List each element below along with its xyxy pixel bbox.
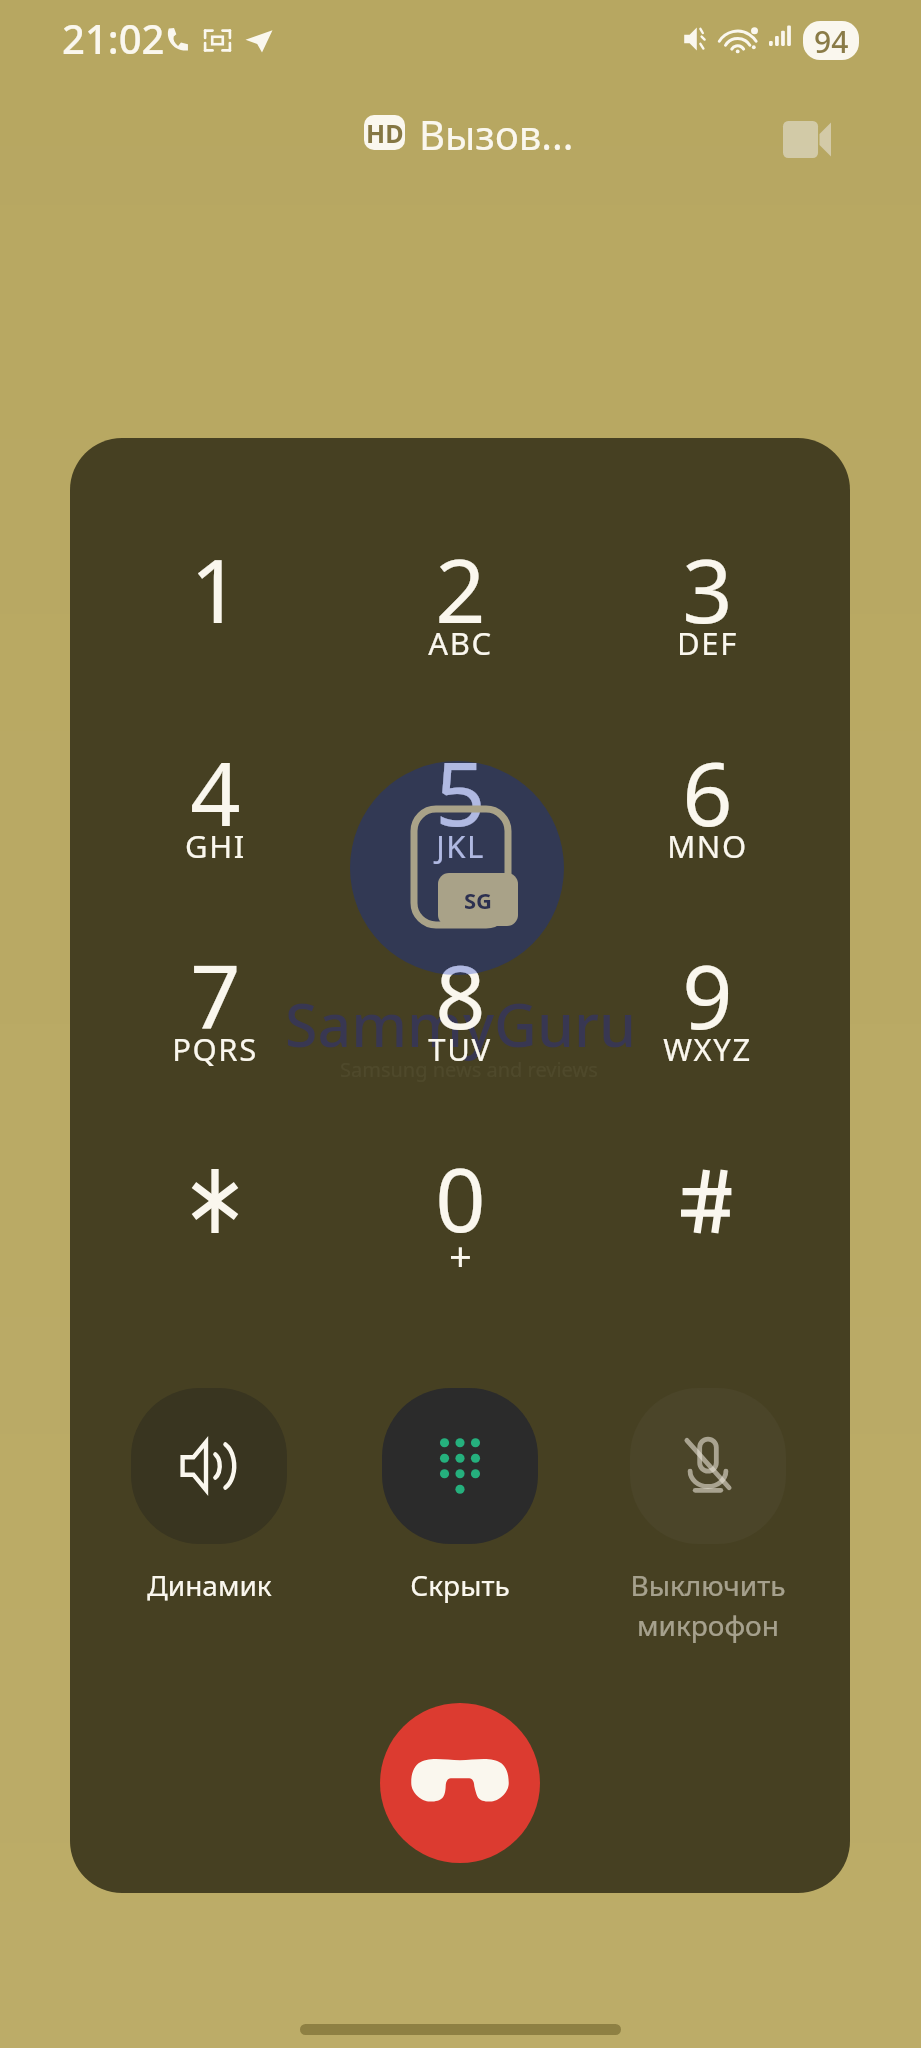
staticText: TUV — [428, 1028, 492, 1070]
button[interactable]: Скрыть — [342, 1388, 578, 1604]
button[interactable]: End call — [380, 1703, 540, 1863]
staticText: GHI — [185, 825, 246, 867]
staticText: MNO — [667, 825, 748, 867]
staticText: Скрыть — [410, 1566, 510, 1604]
staticText: SammyGuru — [285, 984, 636, 1064]
staticText: 2 — [435, 529, 486, 649]
staticText: JKL — [436, 825, 485, 867]
staticText: WXYZ — [663, 1028, 752, 1070]
staticText: Динамик — [147, 1566, 272, 1604]
button[interactable]: Выключить микрофон — [590, 1388, 826, 1645]
button[interactable] — [607, 1124, 807, 1310]
button[interactable]: Video call — [767, 100, 847, 180]
staticText: Выключить микрофон — [630, 1566, 786, 1645]
staticText: Вызов... — [419, 107, 574, 161]
button[interactable] — [115, 515, 315, 701]
staticText: Samsung news and reviews — [340, 1056, 598, 1083]
button[interactable] — [360, 921, 560, 1107]
staticText: SG — [464, 885, 493, 915]
button[interactable] — [115, 718, 315, 904]
staticText: 94 — [814, 21, 849, 60]
staticText: DEF — [677, 622, 738, 664]
staticText: 7 — [190, 935, 241, 1055]
staticText: 4 — [190, 732, 241, 852]
button[interactable] — [360, 1124, 560, 1310]
staticText: 6 — [682, 732, 733, 852]
staticText: + — [449, 1228, 472, 1282]
button[interactable] — [360, 718, 560, 904]
staticText: ABC — [428, 622, 493, 664]
button[interactable] — [607, 921, 807, 1107]
staticText: PQRS — [172, 1028, 258, 1070]
staticText: 8 — [435, 935, 486, 1055]
button[interactable] — [607, 718, 807, 904]
button[interactable] — [607, 515, 807, 701]
button[interactable]: Динамик — [91, 1388, 327, 1604]
staticText: 9 — [682, 935, 733, 1055]
staticText: 3 — [682, 529, 733, 649]
staticText: 1 — [190, 529, 241, 649]
staticText: HD — [366, 116, 404, 150]
button[interactable] — [115, 1124, 315, 1310]
button[interactable] — [115, 921, 315, 1107]
staticText: 21:02 — [62, 11, 165, 65]
staticText: 5 — [435, 732, 486, 852]
button[interactable] — [360, 515, 560, 701]
staticText: 0 — [435, 1138, 486, 1258]
